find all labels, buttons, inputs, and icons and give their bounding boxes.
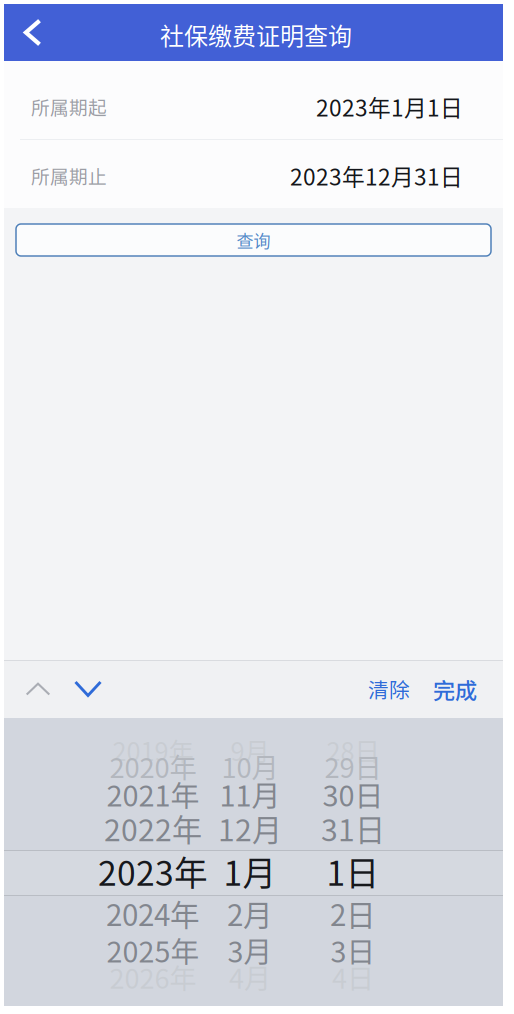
staticText: 2025年	[106, 929, 199, 971]
staticText: 29日	[324, 746, 381, 786]
staticText: 2023年12月31日	[290, 159, 463, 192]
staticText: 2月	[227, 892, 273, 934]
staticText: 2023年1月1日	[316, 90, 463, 123]
staticText: 3日	[330, 929, 375, 971]
staticText: 2026年	[109, 957, 196, 997]
staticText: 2022年	[104, 806, 202, 850]
staticText: 查询	[236, 228, 270, 252]
staticText: 2019年	[112, 732, 193, 768]
staticText: 4日	[332, 957, 374, 997]
staticText: 1日	[326, 847, 379, 895]
staticText: 9月	[230, 732, 269, 768]
staticText: 2020年	[109, 746, 196, 786]
staticText: 2024年	[106, 892, 200, 934]
staticText: 11月	[219, 773, 280, 815]
button[interactable]: 查询	[16, 224, 491, 256]
staticText: 社保缴费证明查询	[160, 17, 352, 52]
staticText: 清除	[368, 674, 410, 704]
button[interactable]: 下一项	[66, 660, 110, 717]
staticText: 2021年	[106, 773, 199, 815]
button[interactable]: 完成	[424, 660, 486, 717]
staticText: 31日	[321, 806, 385, 850]
button[interactable]: 上一项	[16, 660, 60, 717]
staticText: 4月	[229, 957, 271, 997]
staticText: 2023年	[98, 847, 208, 895]
button[interactable]: 所属期起	[4, 61, 503, 140]
staticText: 30日	[322, 773, 383, 815]
staticText: 12月	[218, 806, 282, 850]
staticText: 2日	[330, 892, 376, 934]
button[interactable]: 清除	[359, 660, 419, 717]
staticText: 完成	[433, 673, 477, 705]
staticText: 所属期起	[31, 93, 107, 120]
staticText: 10月	[221, 746, 278, 786]
staticText: 3月	[227, 929, 272, 971]
button[interactable]: 所属期止	[4, 140, 503, 208]
staticText: 1月	[223, 847, 276, 895]
button[interactable]: 返回	[4, 4, 61, 61]
staticText: 28日	[326, 732, 379, 768]
staticText: 所属期止	[31, 162, 107, 189]
